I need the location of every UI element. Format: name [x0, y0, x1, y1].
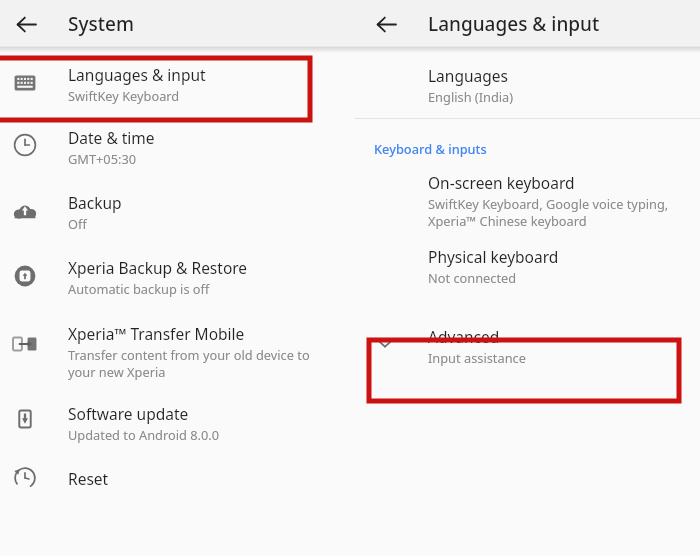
staticText: SwiftKey Keyboard: [68, 87, 180, 104]
staticText: Languages & input: [428, 11, 600, 37]
staticText: Updated to Android 8.0.0: [68, 426, 220, 443]
staticText: On-screen keyboard: [428, 172, 575, 193]
staticText: Backup: [68, 192, 122, 213]
staticText: GMT+05:30: [68, 150, 137, 167]
staticText: Xperia Backup & Restore: [68, 257, 248, 278]
staticText: Reset: [68, 468, 109, 489]
staticText: SwiftKey Keyboard, Google voice typing,: [428, 195, 669, 212]
button[interactable]: Back: [11, 9, 41, 39]
staticText: Physical keyboard: [428, 246, 559, 267]
button[interactable]: On-screen keyboard: [350, 164, 700, 240]
button[interactable]: Reset: [0, 453, 350, 513]
staticText: Xperia™ Chinese keyboard: [428, 212, 587, 229]
staticText: Keyboard & inputs: [374, 140, 487, 157]
button[interactable]: Physical keyboard: [350, 240, 700, 306]
staticText: Off: [68, 215, 87, 232]
staticText: Automatic backup is off: [68, 280, 210, 297]
staticText: Languages: [428, 65, 508, 86]
button[interactable]: Software update: [0, 389, 350, 453]
staticText: your new Xperia: [68, 363, 166, 380]
staticText: English (India): [428, 88, 514, 105]
staticText: Xperia™ Transfer Mobile: [68, 323, 245, 344]
button[interactable]: Languages & input: [0, 52, 350, 113]
staticText: Transfer content from your old device to: [68, 346, 310, 363]
button[interactable]: Languages: [350, 52, 700, 118]
button[interactable]: Xperia™ Transfer Mobile: [0, 311, 350, 389]
staticText: Date & time: [68, 127, 155, 148]
staticText: Software update: [68, 403, 189, 424]
button[interactable]: Backup: [0, 178, 350, 243]
button[interactable]: Xperia Backup & Restore: [0, 243, 350, 311]
button[interactable]: Back: [371, 9, 401, 39]
staticText: Not connected: [428, 269, 517, 286]
button[interactable]: Date & time: [0, 113, 350, 178]
button[interactable]: Advanced: [350, 312, 700, 374]
staticText: Advanced: [428, 326, 500, 347]
staticText: Input assistance: [428, 349, 526, 366]
staticText: Languages & input: [68, 64, 206, 85]
staticText: System: [68, 11, 134, 37]
